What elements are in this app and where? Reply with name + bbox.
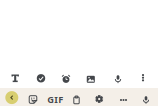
- button[interactable]: Voice typing: [137, 91, 155, 106]
- button[interactable]: GIF: [45, 90, 65, 106]
- button[interactable]: Send now: [30, 67, 52, 89]
- button[interactable]: Schedule send: [55, 68, 77, 90]
- button[interactable]: Clipboard: [67, 91, 85, 106]
- button[interactable]: More: [114, 91, 132, 106]
- button[interactable]: Settings: [90, 90, 108, 106]
- button[interactable]: Insert photo: [80, 68, 102, 90]
- staticText: GIF: [47, 93, 63, 106]
- button[interactable]: Text formatting: [4, 67, 26, 89]
- button[interactable]: Stickers: [24, 90, 42, 106]
- button[interactable]: Voice message: [107, 68, 129, 90]
- button[interactable]: More options: [132, 67, 154, 89]
- button[interactable]: Back: [3, 89, 21, 106]
